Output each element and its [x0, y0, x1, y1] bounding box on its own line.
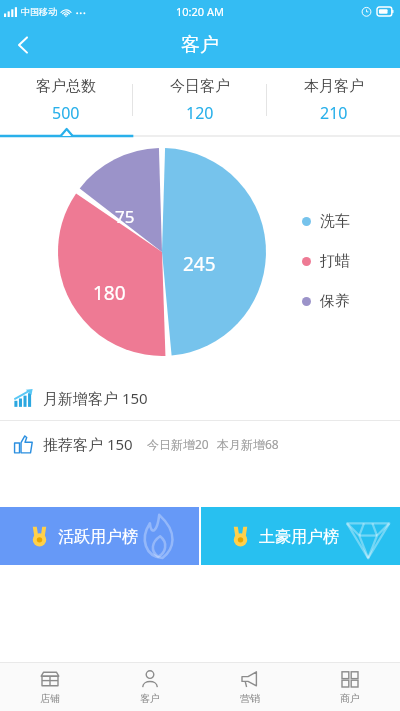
staticText: 打蜡 [320, 252, 350, 271]
staticText: 月新增客户 150 [43, 388, 148, 408]
staticText: 营销 [240, 692, 260, 705]
button[interactable]: Merchant [300, 663, 400, 711]
button[interactable]: 活跃用户榜 [0, 507, 199, 565]
staticText: 中国移动 [21, 6, 57, 17]
staticText: 客户 [140, 692, 160, 705]
staticText: 245 [183, 251, 216, 277]
staticText: 10:20 AM [176, 4, 224, 19]
button[interactable]: Marketing [200, 663, 300, 711]
staticText: 210 [320, 102, 348, 124]
staticText: 客户总数 [36, 77, 96, 96]
staticText: 120 [186, 102, 214, 124]
staticText: 店铺 [40, 692, 60, 705]
button[interactable]: 今日客户 [133, 68, 266, 132]
staticText: 180 [93, 280, 126, 306]
staticText: 本月客户 [304, 77, 364, 96]
staticText: 保养 [320, 292, 350, 311]
staticText: 推荐客户 150 [43, 434, 133, 454]
button[interactable]: 土豪用户榜 [201, 507, 400, 565]
staticText: 客户 [181, 33, 219, 57]
button[interactable]: Back [0, 22, 46, 68]
staticText: 洗车 [320, 212, 350, 231]
button[interactable]: 客户总数 [0, 68, 132, 132]
staticText: 本月新增68 [217, 436, 279, 452]
staticText: 商户 [340, 692, 360, 705]
button[interactable]: Customers [100, 663, 200, 711]
staticText: 今日客户 [170, 77, 230, 96]
button[interactable]: 月新增客户 150 [0, 376, 400, 420]
button[interactable]: 本月客户 [267, 68, 400, 132]
button[interactable]: 推荐客户 150 [0, 421, 400, 467]
staticText: 500 [52, 102, 80, 124]
button[interactable]: Shop [0, 663, 100, 711]
staticText: 今日新增20 [147, 436, 209, 452]
staticText: 土豪用户榜 [259, 527, 339, 547]
staticText: 活跃用户榜 [58, 527, 138, 547]
staticText: 75 [115, 205, 135, 228]
